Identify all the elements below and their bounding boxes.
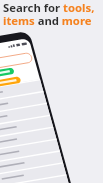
other: Phone app preview (0, 0, 103, 183)
staticText: Search for tools, items and more (3, 0, 95, 28)
